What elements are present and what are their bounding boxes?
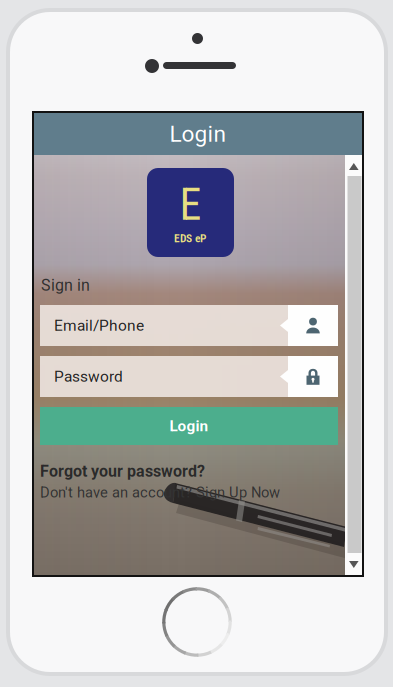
- button[interactable]: Forgot your password?: [40, 462, 205, 481]
- staticText: Email/Phone: [54, 316, 144, 334]
- button[interactable]: Login: [40, 407, 338, 445]
- button[interactable]: Email/Phone: [40, 305, 338, 346]
- staticText: Don't have an account? Sign Up Now: [40, 484, 280, 501]
- staticText: Forgot your password?: [40, 462, 205, 481]
- button[interactable]: Password: [40, 356, 338, 397]
- staticText: Login: [169, 417, 208, 435]
- staticText: Sign in: [41, 276, 90, 295]
- staticText: Password: [54, 367, 123, 385]
- button[interactable]: Scroll up: [345, 155, 362, 176]
- staticText: Login: [169, 121, 226, 147]
- staticText: E: [179, 179, 201, 231]
- button[interactable]: Scroll down: [345, 553, 362, 575]
- staticText: EDS eP: [174, 232, 207, 245]
- button[interactable]: Don't have an account? Sign Up Now: [40, 484, 280, 501]
